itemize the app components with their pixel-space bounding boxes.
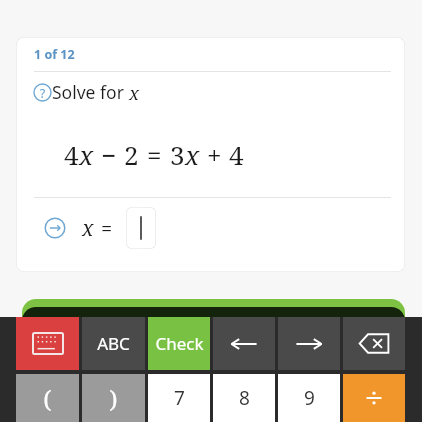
staticText: Check [155, 332, 204, 355]
button[interactable]: Answer input [126, 207, 156, 249]
button[interactable]: Next [278, 317, 340, 370]
staticText: ABC [97, 332, 130, 355]
staticText: ) [109, 382, 118, 415]
staticText: 7 [174, 385, 185, 411]
button[interactable]: ABC [82, 317, 145, 370]
staticText: 8 [239, 385, 250, 411]
staticText: 3 [170, 137, 185, 172]
staticText: 4 [229, 137, 244, 172]
other: Previous [229, 333, 259, 355]
staticText: = [147, 137, 162, 172]
staticText: x [185, 137, 200, 172]
other: Next [294, 333, 324, 355]
button[interactable]: 9 [278, 374, 340, 422]
staticText: Solve for [52, 80, 129, 104]
other: Keyboard [33, 333, 63, 354]
button[interactable]: 8 [213, 374, 275, 422]
staticText: ( [43, 382, 52, 415]
staticText: 4 [64, 137, 79, 172]
staticText: x [79, 137, 94, 172]
button[interactable]: 7 [148, 374, 210, 422]
button[interactable]: Previous [213, 317, 275, 370]
button[interactable]: Submit answer [44, 217, 66, 239]
button[interactable]: 1 of 12 [16, 37, 405, 272]
button[interactable]: ) [82, 374, 145, 422]
button[interactable]: Check [148, 317, 210, 370]
button[interactable]: Keyboard [16, 317, 79, 370]
button[interactable]: Backspace [343, 317, 405, 370]
staticText: x [82, 214, 94, 243]
button[interactable]: Divide [343, 374, 405, 422]
staticText: ? [40, 85, 46, 101]
staticText: 2 [124, 137, 139, 172]
other: Divide [363, 387, 385, 409]
staticText: 9 [304, 385, 315, 411]
staticText: − [101, 137, 117, 172]
staticText: 1 of 12 [34, 46, 75, 63]
button[interactable]: Hint [33, 83, 52, 102]
staticText: + [207, 137, 222, 172]
other: Backspace [359, 333, 389, 354]
button[interactable]: ( [16, 374, 79, 422]
staticText: x [129, 80, 140, 105]
staticText: = [101, 215, 113, 242]
